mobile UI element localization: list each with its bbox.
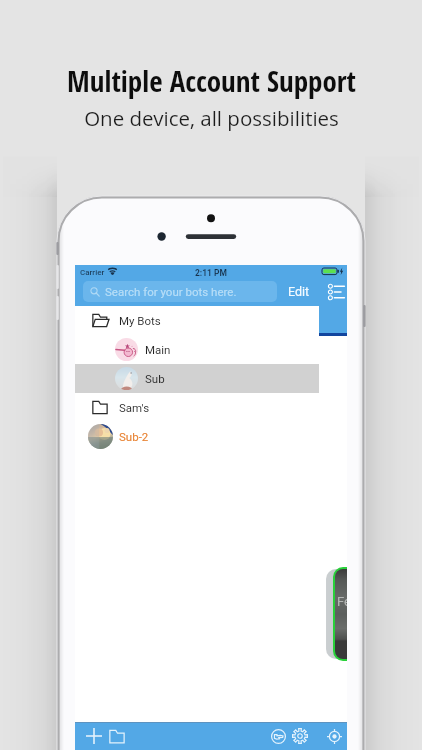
staticText: Main: [145, 343, 171, 356]
button[interactable]: Sort options: [323, 281, 347, 302]
button[interactable]: Sub: [75, 364, 319, 393]
button[interactable]: New folder: [106, 725, 128, 747]
staticText: Sub: [145, 372, 165, 385]
button[interactable]: Sub-2: [75, 422, 319, 451]
staticText: 2:11 PM: [75, 268, 347, 278]
button[interactable]: Search for your bots here.: [83, 281, 277, 302]
staticText: Search for your bots here.: [105, 285, 237, 298]
staticText: Fetc: [337, 594, 347, 609]
button[interactable]: Remote control: [267, 725, 289, 747]
staticText: Edit: [288, 284, 310, 299]
button[interactable]: My Bots: [75, 306, 319, 335]
button[interactable]: Settings: [289, 725, 311, 747]
button[interactable]: Main: [75, 335, 319, 364]
button[interactable]: Add bot: [83, 725, 105, 747]
button[interactable]: Edit: [288, 281, 310, 302]
button[interactable]: Locate: [323, 725, 345, 747]
button[interactable]: Sam's: [75, 393, 319, 422]
staticText: Sub-2: [119, 430, 149, 443]
staticText: Multiple Account Support: [67, 61, 356, 100]
staticText: Carrier: [80, 268, 105, 277]
staticText: Sam's: [119, 401, 150, 414]
staticText: One device, all possibilities: [84, 104, 339, 132]
staticText: My Bots: [119, 314, 161, 327]
